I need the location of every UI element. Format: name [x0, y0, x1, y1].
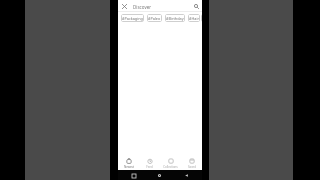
- staticText: Newest: [124, 165, 134, 169]
- button[interactable]: #Packaging: [121, 14, 144, 22]
- staticText: Feed: [146, 165, 153, 169]
- button[interactable]: #Hair: [188, 14, 200, 22]
- staticText: Collections: [163, 165, 178, 169]
- button[interactable]: [201, 14, 202, 22]
- button[interactable]: Search: [192, 2, 201, 11]
- button[interactable]: Feed: [139, 156, 160, 170]
- button[interactable]: Collections: [160, 156, 181, 170]
- button[interactable]: Home: [156, 172, 163, 179]
- button[interactable]: Close: [120, 2, 129, 11]
- button[interactable]: #Paleo: [147, 14, 162, 22]
- staticText: Saved: [188, 165, 196, 169]
- button[interactable]: #Birthday: [165, 14, 185, 22]
- button[interactable]: Saved: [181, 156, 202, 170]
- staticText: #Paleo: [148, 16, 161, 21]
- staticText: #Birthday: [166, 16, 184, 21]
- staticText: #Packaging: [122, 16, 143, 21]
- staticText: #Hair: [189, 16, 199, 21]
- button[interactable]: Back: [183, 172, 190, 179]
- staticText: Discover: [133, 4, 152, 10]
- button[interactable]: Recents: [130, 172, 137, 179]
- button[interactable]: Newest: [118, 156, 139, 170]
